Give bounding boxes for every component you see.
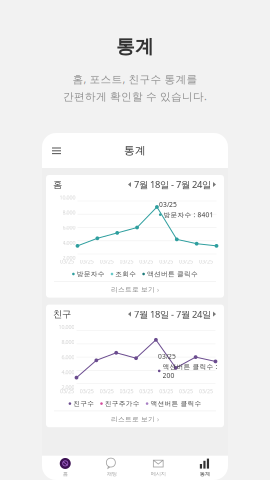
button[interactable]: 채팅 [88, 455, 135, 480]
staticText: 2,000 [62, 254, 75, 261]
staticText: 03/25 [100, 258, 114, 265]
staticText: 03/25 [100, 388, 114, 395]
button[interactable]: 리스트로 보기 [46, 411, 224, 427]
staticText: 8,000 [62, 209, 75, 216]
staticText: 리스트로 보기 [111, 415, 155, 423]
staticText: 액션버튼 클릭수 : 200 [162, 362, 217, 380]
staticText: 방문자수 : 8401 [163, 210, 213, 219]
staticText: 홈, 포스트, 친구수 통계를 [72, 72, 197, 86]
staticText: 10,000 [59, 194, 75, 201]
staticText: 03/25 [199, 258, 213, 265]
staticText: 03/25 [159, 258, 173, 265]
staticText: 03/25 [158, 352, 176, 361]
staticText: 7월 18일 - 7월 24일 [134, 178, 211, 191]
staticText: 액션버튼 클릭수 [150, 399, 201, 408]
button[interactable]: 통계 [181, 455, 228, 480]
staticText: 4,000 [62, 239, 75, 246]
staticText: 03/25 [159, 200, 177, 209]
staticText: 03/25 [159, 388, 173, 395]
staticText: 2,000 [61, 384, 74, 391]
button[interactable]: 홈 [42, 455, 88, 480]
staticText: 통계 [200, 470, 210, 477]
staticText: 방문자수 [77, 270, 105, 278]
staticText: › [157, 415, 159, 424]
staticText: 친구 [53, 308, 71, 320]
staticText: 03/25 [179, 388, 193, 395]
button[interactable]: 메시지 [135, 455, 181, 480]
staticText: 7월 18일 - 7월 24일 [134, 308, 211, 320]
staticText: 03/25 [199, 388, 213, 395]
button[interactable]: 메뉴 [47, 142, 66, 158]
staticText: 메시지 [151, 470, 166, 477]
staticText: 8,000 [61, 338, 74, 346]
staticText: 통계 [124, 144, 146, 157]
button[interactable]: 리스트로 보기 [46, 282, 224, 298]
staticText: 4,000 [61, 369, 74, 376]
staticText: 10,000 [58, 323, 74, 330]
staticText: 리스트로 보기 [111, 285, 155, 294]
staticText: 03/25 [119, 388, 133, 395]
staticText: 03/25 [80, 258, 94, 265]
staticText: 채팅 [107, 470, 117, 477]
staticText: › [157, 285, 159, 294]
staticText: 6,000 [62, 224, 75, 231]
staticText: 03/25 [119, 258, 133, 265]
staticText: 6,000 [61, 354, 74, 361]
staticText: 액션버튼 클릭수 [147, 270, 198, 278]
button[interactable]: 7월 18일 - 7월 24일 [128, 178, 217, 190]
staticText: 03/25 [60, 258, 74, 265]
button[interactable]: 7월 18일 - 7월 24일 [128, 308, 217, 320]
staticText: 친구추가수 [105, 399, 140, 408]
staticText: 03/25 [80, 388, 94, 395]
staticText: 03/25 [179, 258, 193, 265]
staticText: 통계 [116, 35, 154, 58]
staticText: 홈 [63, 470, 68, 477]
staticText: 03/25 [60, 388, 74, 395]
staticText: 간편하게 확인할 수 있습니다. [63, 89, 207, 103]
staticText: 03/25 [139, 388, 153, 395]
staticText: 친구수 [73, 399, 94, 408]
staticText: 조회수 [115, 270, 136, 278]
staticText: 홈 [53, 179, 62, 190]
staticText: 03/25 [139, 258, 153, 265]
